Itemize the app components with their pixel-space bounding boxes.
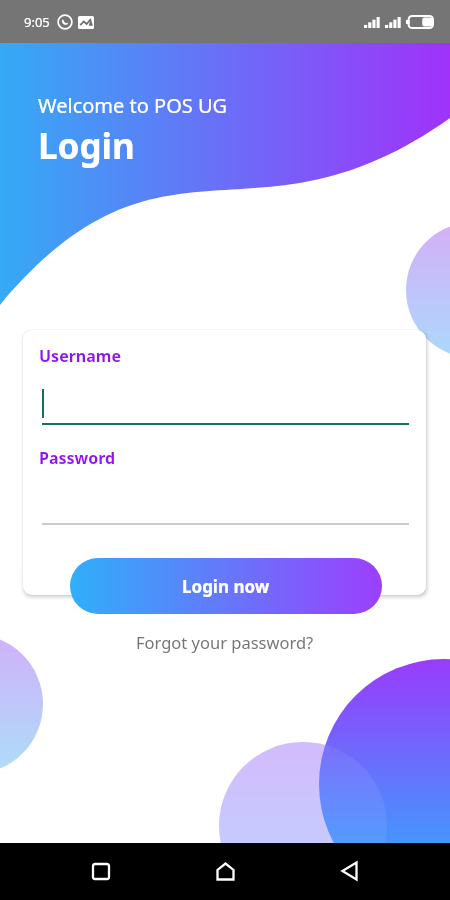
- staticText: Welcome to POS UG: [38, 92, 228, 119]
- staticText: 9:05: [24, 13, 50, 31]
- button[interactable]: Back: [326, 848, 372, 894]
- staticText: Username: [39, 345, 121, 367]
- button[interactable]: Home: [202, 848, 248, 894]
- staticText: Forgot your password?: [136, 631, 314, 653]
- staticText: Login: [38, 122, 135, 170]
- button[interactable]: Forgot your password?: [130, 628, 320, 656]
- button[interactable]: Login now: [70, 558, 382, 614]
- button[interactable]: Recents: [78, 848, 124, 894]
- staticText: Login now: [182, 575, 270, 598]
- button[interactable]: Password input: [42, 490, 409, 525]
- button[interactable]: Username input: [42, 388, 409, 425]
- staticText: Password: [39, 447, 116, 469]
